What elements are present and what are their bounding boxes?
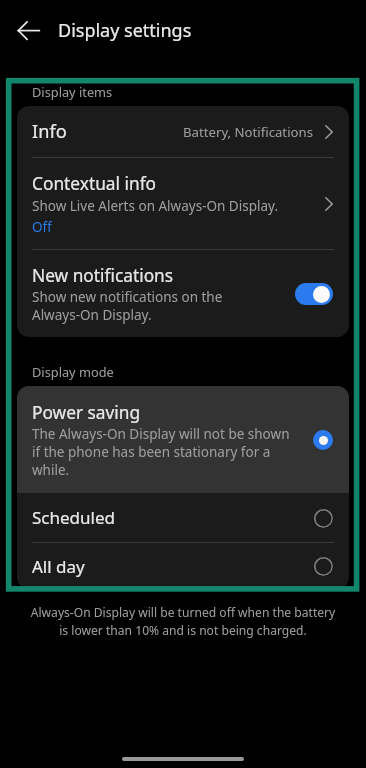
staticText: Display items (32, 83, 113, 100)
staticText: Display settings (58, 18, 192, 43)
staticText: Info (32, 119, 67, 144)
staticText: All day (32, 555, 85, 578)
staticText: Scheduled (32, 506, 115, 529)
staticText: Power saving (32, 401, 141, 425)
staticText: Show new notifications on the Always-On … (32, 288, 232, 324)
button[interactable]: Contextual info (17, 158, 349, 249)
staticText: The Always-On Display will not be shown … (32, 425, 294, 479)
staticText: Display mode (32, 363, 114, 380)
staticText: Battery, Notifications (183, 123, 313, 141)
button[interactable]: Scheduled (17, 493, 349, 542)
staticText: Show Live Alerts on Always-On Display. (32, 197, 278, 215)
button[interactable]: All day (17, 543, 349, 589)
button[interactable]: New notifications (17, 250, 349, 337)
button[interactable]: Power saving selected (313, 430, 333, 450)
button[interactable]: Back (17, 19, 41, 43)
button[interactable]: Info (17, 106, 349, 157)
button[interactable]: Show new notifications toggle (295, 283, 333, 305)
staticText: Off (32, 218, 52, 236)
button[interactable]: Power saving (17, 386, 349, 493)
button[interactable]: Select All day (313, 556, 333, 576)
staticText: Always-On Display will be turned off whe… (25, 604, 341, 639)
button[interactable]: Select Scheduled (313, 508, 333, 528)
staticText: Contextual info (32, 172, 157, 196)
staticText: New notifications (32, 264, 174, 288)
